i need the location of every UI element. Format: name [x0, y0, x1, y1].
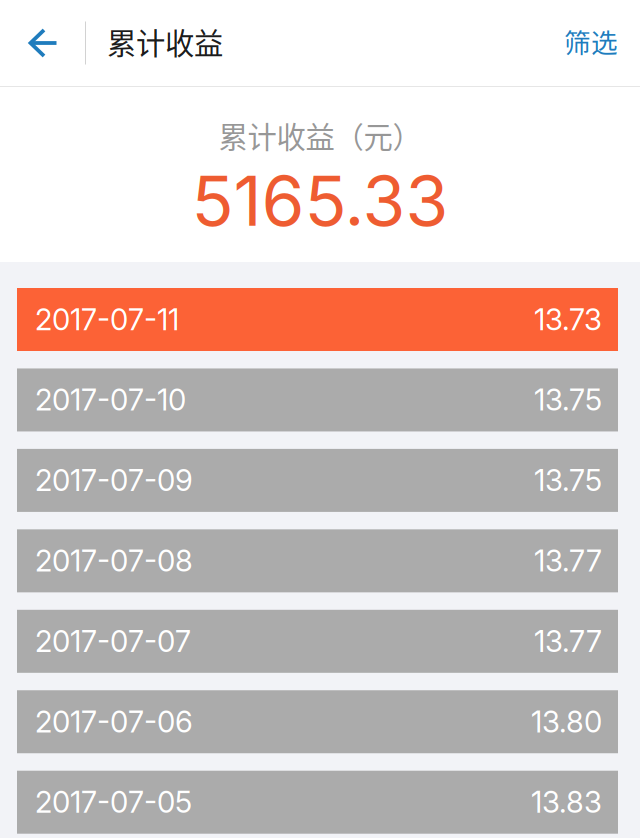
button[interactable]: 2017-07-09 — [17, 449, 618, 512]
staticText: 2017-07-08 — [35, 543, 193, 579]
button[interactable]: 2017-07-11 — [17, 288, 618, 351]
staticText: 13.75 — [534, 463, 602, 498]
staticText: 2017-07-05 — [35, 784, 192, 820]
staticText: 13.75 — [534, 382, 602, 418]
button[interactable]: Back — [0, 0, 85, 86]
button[interactable]: 2017-07-10 — [17, 368, 618, 431]
staticText: 13.77 — [534, 543, 602, 579]
staticText: 13.80 — [531, 704, 602, 739]
staticText: 2017-07-09 — [35, 463, 193, 498]
staticText: 2017-07-10 — [35, 382, 186, 418]
button[interactable]: 2017-07-08 — [17, 529, 618, 592]
button[interactable]: 2017-07-06 — [17, 690, 618, 753]
staticText: 2017-07-11 — [35, 302, 179, 337]
staticText: 筛选 — [564, 22, 618, 60]
button[interactable]: 2017-07-05 — [17, 771, 618, 834]
button[interactable]: 筛选 — [542, 0, 640, 86]
button[interactable]: 2017-07-07 — [17, 610, 618, 673]
staticText: 5165.33 — [191, 158, 448, 242]
staticText: 2017-07-06 — [35, 704, 193, 739]
staticText: 累计收益 — [107, 20, 223, 63]
staticText: 13.73 — [534, 302, 602, 337]
staticText: 2017-07-07 — [35, 624, 191, 659]
staticText: 13.83 — [531, 784, 602, 820]
staticText: 13.77 — [534, 624, 602, 659]
staticText: 累计收益（元） — [218, 114, 421, 156]
